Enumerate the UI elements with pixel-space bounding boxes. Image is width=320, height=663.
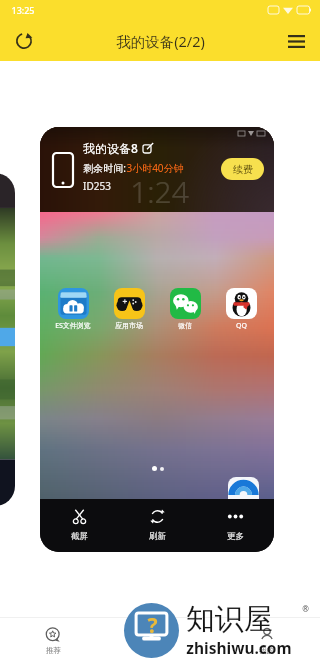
staticText: 1:24	[130, 171, 189, 212]
button[interactable]: 设备	[106, 618, 213, 663]
button[interactable]: Menu	[279, 24, 313, 58]
button[interactable]: 更多	[196, 499, 274, 552]
staticText: 剩余时间:	[83, 161, 126, 175]
staticText: QQ	[236, 321, 247, 331]
staticText: 刷新	[149, 531, 166, 542]
staticText: 截屏	[71, 531, 88, 542]
button[interactable]: 我的	[213, 618, 320, 663]
staticText: ?	[147, 611, 158, 640]
staticText: 我的	[259, 646, 274, 655]
button[interactable]: 推荐	[0, 618, 106, 663]
staticText: ®	[302, 603, 309, 614]
staticText: zhishiwu.com	[186, 637, 292, 658]
staticText: 我的设备8	[83, 140, 138, 156]
staticText: ES文件浏览	[55, 321, 91, 331]
button[interactable]: Refresh	[7, 24, 41, 58]
button[interactable]: 截屏	[40, 499, 118, 552]
button[interactable]: 应用市场	[105, 288, 153, 330]
staticText: 更多	[227, 531, 244, 542]
staticText: 应用市场	[115, 321, 143, 330]
button[interactable]: 续费	[221, 158, 264, 180]
staticText: 我的设备(2/2)	[116, 31, 205, 51]
staticText: 续费	[233, 163, 253, 176]
staticText: 微信	[178, 321, 192, 330]
staticText: 知识屋	[186, 601, 273, 638]
button[interactable]: ES文件浏览	[49, 288, 97, 331]
button[interactable]: 刷新	[118, 499, 196, 552]
staticText: 13:25	[11, 4, 35, 16]
button[interactable]: QQ	[217, 288, 265, 331]
staticText: 设备	[152, 646, 167, 655]
button[interactable]: 微信	[161, 288, 209, 330]
staticText: 推荐	[46, 646, 61, 655]
staticText: ID253	[83, 179, 111, 193]
staticText: 3小时40分钟	[126, 161, 184, 175]
